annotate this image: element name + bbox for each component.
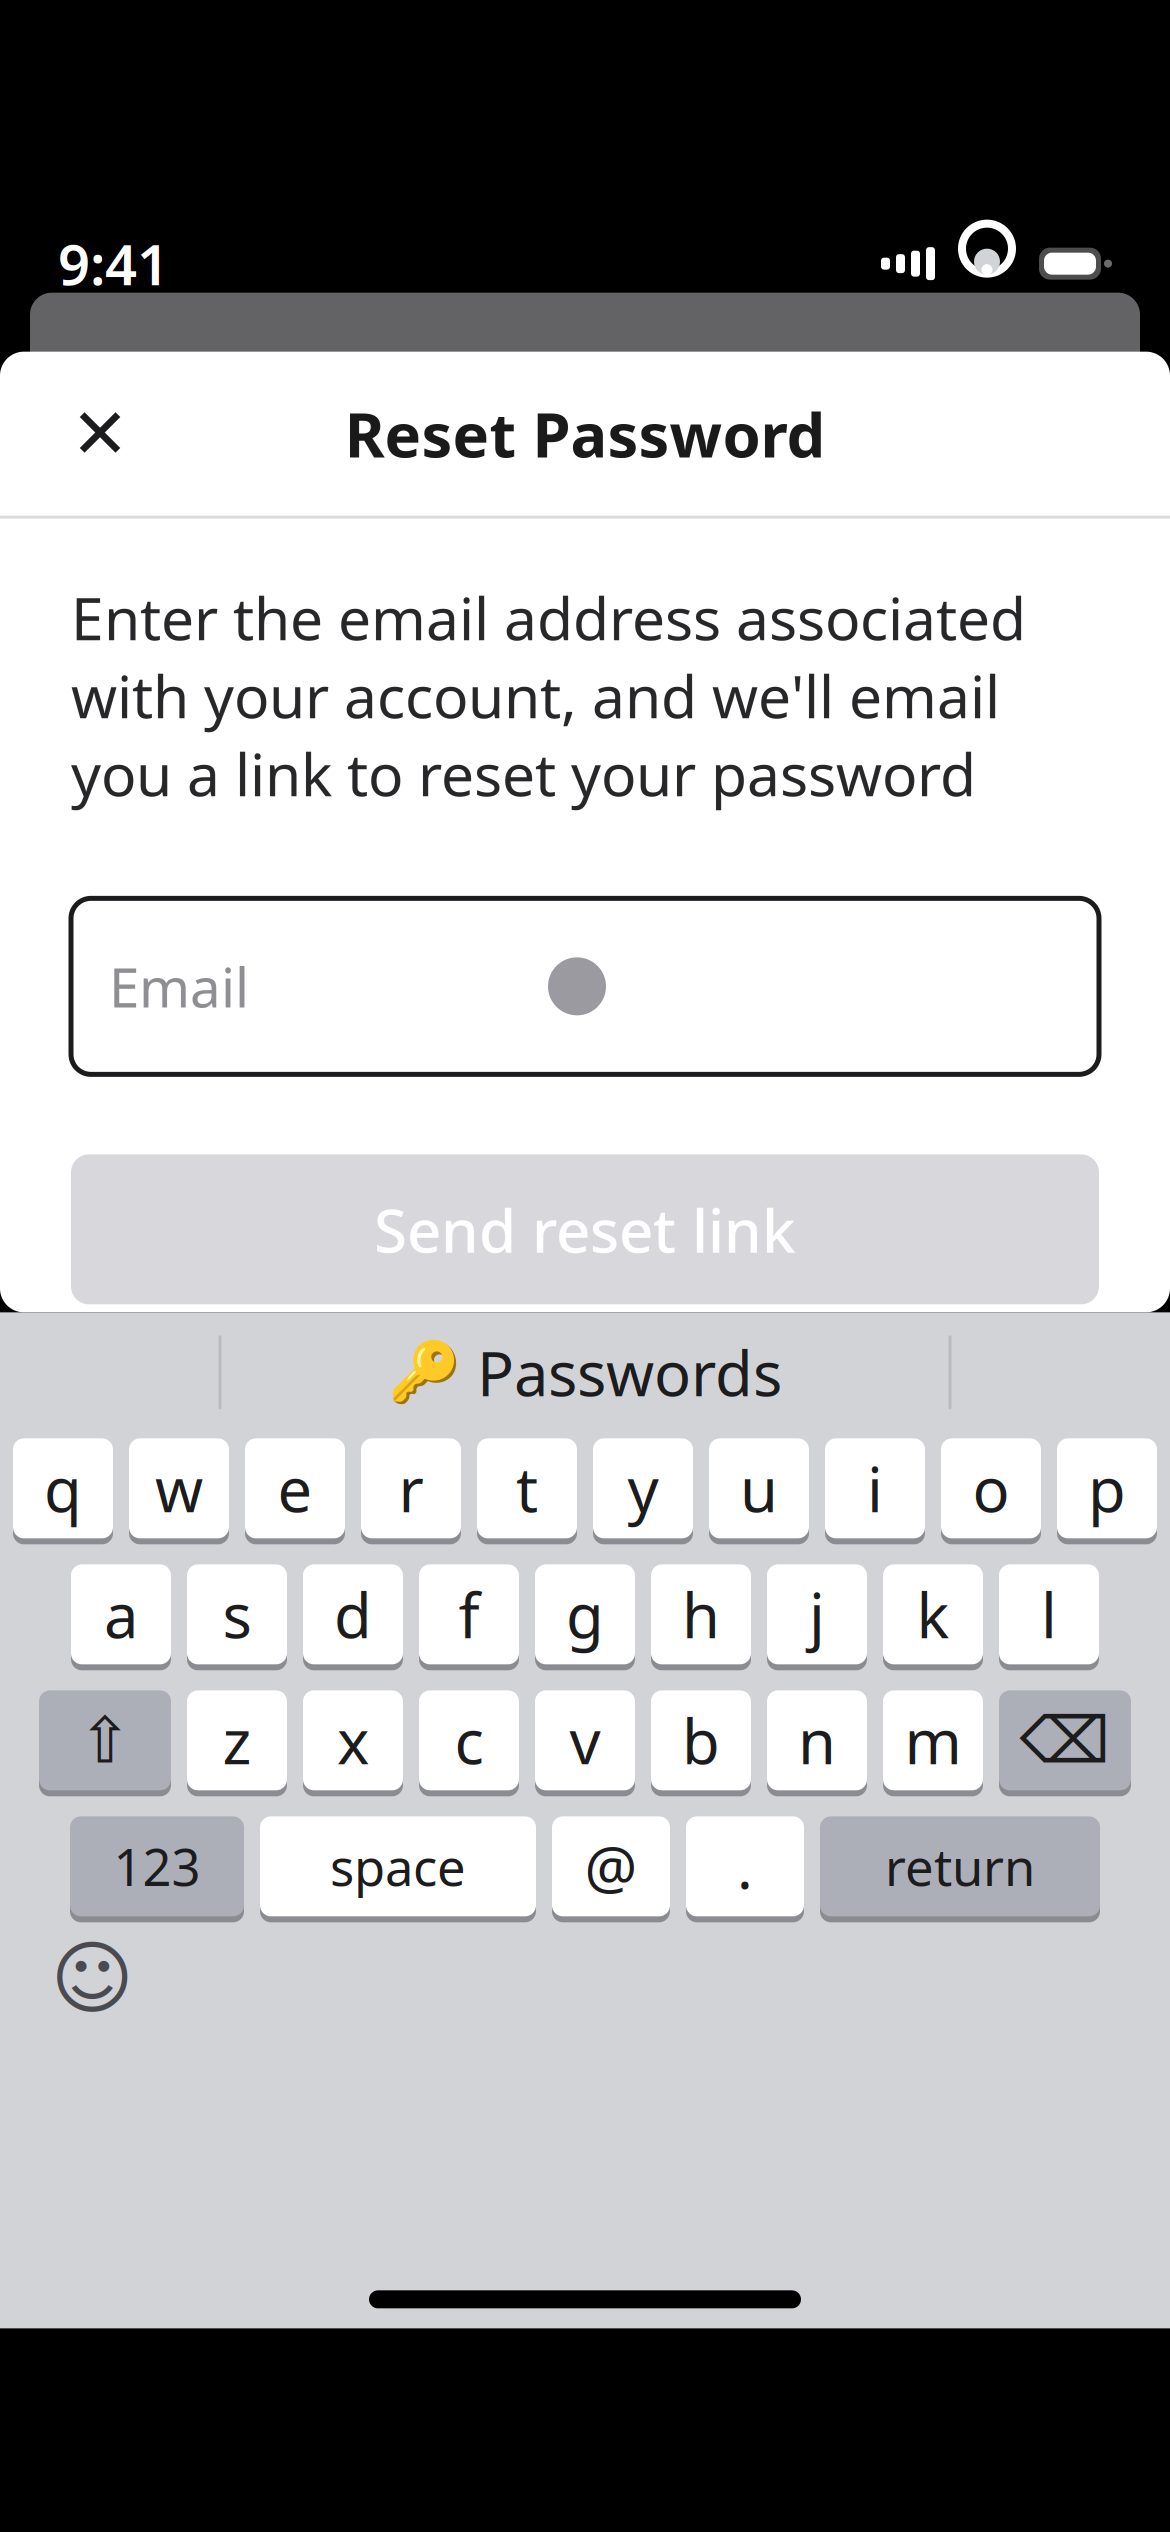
staticText: s [222,1574,251,1655]
staticText: Send reset link [374,1189,796,1269]
staticText: v [569,1700,600,1781]
staticText: o [972,1448,1009,1529]
button[interactable]: 🔑 [364,1327,806,1417]
staticText: Email [109,950,249,1023]
staticText: i [867,1448,883,1529]
button[interactable]: z [187,1690,287,1796]
button[interactable]: m [883,1690,983,1796]
button[interactable]: 123 [70,1816,244,1922]
button[interactable]: Send reset link [71,1154,1099,1304]
button[interactable]: v [535,1690,635,1796]
button[interactable]: @ [552,1816,670,1922]
staticText: p [1088,1448,1126,1529]
button[interactable]: return [820,1816,1100,1922]
button[interactable]: a [71,1564,171,1670]
button[interactable]: u [709,1438,809,1544]
staticText: d [334,1574,372,1655]
button[interactable]: space [260,1816,536,1922]
button[interactable]: p [1057,1438,1157,1544]
staticText: c [454,1700,483,1781]
button[interactable]: l [999,1564,1099,1670]
button[interactable]: c [419,1690,519,1796]
button[interactable]: w [129,1438,229,1544]
button[interactable]: Emoji [50,1936,134,2020]
staticText: u [740,1448,778,1529]
button[interactable]: t [477,1438,577,1544]
staticText: e [277,1448,312,1529]
button[interactable]: n [767,1690,867,1796]
staticText: return [885,1833,1035,1900]
button[interactable]: j [767,1564,867,1670]
button[interactable]: h [651,1564,751,1670]
button[interactable]: Delete [999,1690,1131,1796]
staticText: ⇧ [78,1704,132,1777]
staticText: t [516,1448,538,1529]
staticText: n [798,1700,836,1781]
staticText: b [682,1700,720,1781]
button[interactable]: o [941,1438,1041,1544]
staticText: l [1041,1574,1057,1655]
staticText: space [330,1833,466,1900]
staticText: Passwords [477,1332,782,1413]
button[interactable]: r [361,1438,461,1544]
button[interactable]: f [419,1564,519,1670]
staticText: h [682,1574,720,1655]
staticText: @ [584,1827,637,1905]
staticText: x [337,1700,369,1781]
staticText: w [155,1448,203,1529]
staticText: ✕ [71,394,129,473]
button[interactable]: x [303,1690,403,1796]
staticText: q [44,1448,82,1529]
button[interactable]: b [651,1690,751,1796]
button[interactable]: Shift [39,1690,171,1796]
staticText: 🔑 [388,1339,461,1406]
staticText: . [737,1827,753,1905]
button[interactable]: i [825,1438,925,1544]
staticText: f [458,1574,479,1655]
button[interactable]: y [593,1438,693,1544]
staticText: r [398,1448,423,1529]
button[interactable]: s [187,1564,287,1670]
button[interactable]: . [686,1816,804,1922]
button[interactable]: q [13,1438,113,1544]
staticText: Reset Password [344,393,825,474]
staticText: g [566,1574,604,1655]
button[interactable]: k [883,1564,983,1670]
button[interactable]: e [245,1438,345,1544]
staticText: j [809,1574,825,1655]
staticText: ☺ [50,1933,133,2024]
button[interactable]: Close [50,386,150,482]
button[interactable]: d [303,1564,403,1670]
staticText: z [222,1700,251,1781]
staticText: 123 [113,1833,200,1900]
staticText: ⌫ [1019,1704,1110,1777]
staticText: m [904,1700,961,1781]
staticText: Enter the email address associated with … [71,579,1026,812]
staticText: a [104,1574,138,1655]
staticText: k [916,1574,949,1655]
staticText: y [627,1448,658,1529]
staticText: 9:41 [58,226,169,301]
button[interactable]: g [535,1564,635,1670]
